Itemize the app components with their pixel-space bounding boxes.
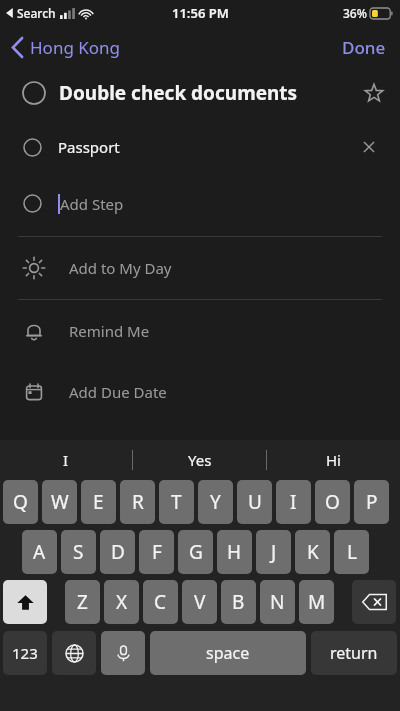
staticText: X bbox=[116, 589, 128, 615]
button[interactable]: S bbox=[61, 530, 96, 574]
staticText: space bbox=[206, 642, 250, 664]
button[interactable]: W bbox=[42, 480, 77, 524]
button[interactable]: M bbox=[299, 580, 334, 624]
button[interactable]: F bbox=[139, 530, 174, 574]
staticText: P bbox=[366, 489, 378, 515]
button[interactable]: 123 bbox=[3, 631, 47, 675]
staticText: I bbox=[63, 450, 69, 470]
staticText: N bbox=[270, 589, 285, 615]
button[interactable]: Backspace bbox=[352, 580, 396, 624]
staticText: D bbox=[111, 539, 125, 565]
button[interactable]: I bbox=[0, 440, 132, 480]
staticText: Double check documents bbox=[59, 80, 364, 106]
button[interactable]: Shift bbox=[3, 580, 47, 624]
staticText: L bbox=[347, 539, 357, 565]
staticText: Hi bbox=[326, 450, 341, 470]
staticText: 36% bbox=[343, 5, 367, 21]
staticText: Q bbox=[13, 489, 28, 515]
staticText: 123 bbox=[12, 643, 38, 663]
staticText: G bbox=[189, 539, 203, 565]
staticText: 11:56 PM bbox=[172, 4, 229, 22]
button[interactable]: Add Step bbox=[0, 176, 400, 231]
staticText: Add Step bbox=[60, 194, 124, 214]
button[interactable]: Hong Kong bbox=[0, 30, 131, 65]
button[interactable]: U bbox=[237, 480, 272, 524]
staticText: Add to My Day bbox=[69, 258, 172, 278]
button[interactable]: Q bbox=[3, 480, 38, 524]
staticText: Hong Kong bbox=[30, 36, 121, 59]
button[interactable]: Double check documents bbox=[0, 68, 400, 118]
staticText: C bbox=[154, 589, 167, 615]
staticText: T bbox=[171, 489, 182, 515]
staticText: H bbox=[227, 539, 242, 565]
staticText: M bbox=[308, 589, 326, 615]
button[interactable]: V bbox=[182, 580, 217, 624]
staticText: Add Due Date bbox=[69, 382, 167, 402]
button[interactable]: K bbox=[295, 530, 330, 574]
button[interactable]: N bbox=[260, 580, 295, 624]
staticText: R bbox=[132, 489, 144, 515]
button[interactable]: return bbox=[311, 631, 397, 675]
button[interactable]: Remind Me bbox=[0, 300, 400, 361]
staticText: U bbox=[248, 489, 262, 515]
staticText: A bbox=[33, 539, 46, 565]
button[interactable]: Z bbox=[65, 580, 100, 624]
button[interactable]: Hi bbox=[267, 440, 400, 480]
staticText: E bbox=[93, 489, 104, 515]
button[interactable]: Add to My Day bbox=[0, 237, 400, 299]
button[interactable]: H bbox=[217, 530, 252, 574]
other: Remove step bbox=[360, 138, 378, 156]
button[interactable]: Dictate bbox=[101, 631, 145, 675]
staticText: J bbox=[271, 539, 277, 565]
button[interactable]: B bbox=[221, 580, 256, 624]
button[interactable]: space bbox=[150, 631, 306, 675]
staticText: I bbox=[290, 489, 297, 515]
staticText: K bbox=[307, 539, 319, 565]
button[interactable]: D bbox=[100, 530, 135, 574]
button[interactable]: X bbox=[104, 580, 139, 624]
staticText: Z bbox=[77, 589, 88, 615]
staticText: F bbox=[152, 539, 162, 565]
staticText: return bbox=[330, 642, 378, 664]
button[interactable]: T bbox=[159, 480, 194, 524]
button[interactable]: Add Due Date bbox=[0, 361, 400, 423]
staticText: S bbox=[73, 539, 84, 565]
staticText: V bbox=[194, 589, 206, 615]
other: Mark as important bbox=[364, 83, 384, 103]
button[interactable]: O bbox=[315, 480, 350, 524]
button[interactable]: I bbox=[276, 480, 311, 524]
button[interactable]: Yes bbox=[133, 440, 266, 480]
button[interactable]: R bbox=[120, 480, 155, 524]
button[interactable]: Switch keyboard bbox=[52, 631, 96, 675]
button[interactable]: E bbox=[81, 480, 116, 524]
button[interactable]: L bbox=[334, 530, 369, 574]
button[interactable]: Passport bbox=[0, 118, 400, 176]
staticText: Yes bbox=[188, 450, 212, 470]
staticText: O bbox=[325, 489, 340, 515]
button[interactable]: A bbox=[22, 530, 57, 574]
staticText: Search bbox=[17, 5, 56, 21]
staticText: Remind Me bbox=[69, 321, 150, 341]
staticText: Y bbox=[210, 489, 221, 515]
button[interactable]: Y bbox=[198, 480, 233, 524]
button[interactable]: Done bbox=[328, 30, 400, 65]
button[interactable]: J bbox=[256, 530, 291, 574]
staticText: Passport bbox=[58, 137, 360, 157]
button[interactable]: G bbox=[178, 530, 213, 574]
staticText: W bbox=[51, 489, 69, 515]
staticText: B bbox=[232, 589, 245, 615]
button[interactable]: P bbox=[354, 480, 389, 524]
button[interactable]: C bbox=[143, 580, 178, 624]
